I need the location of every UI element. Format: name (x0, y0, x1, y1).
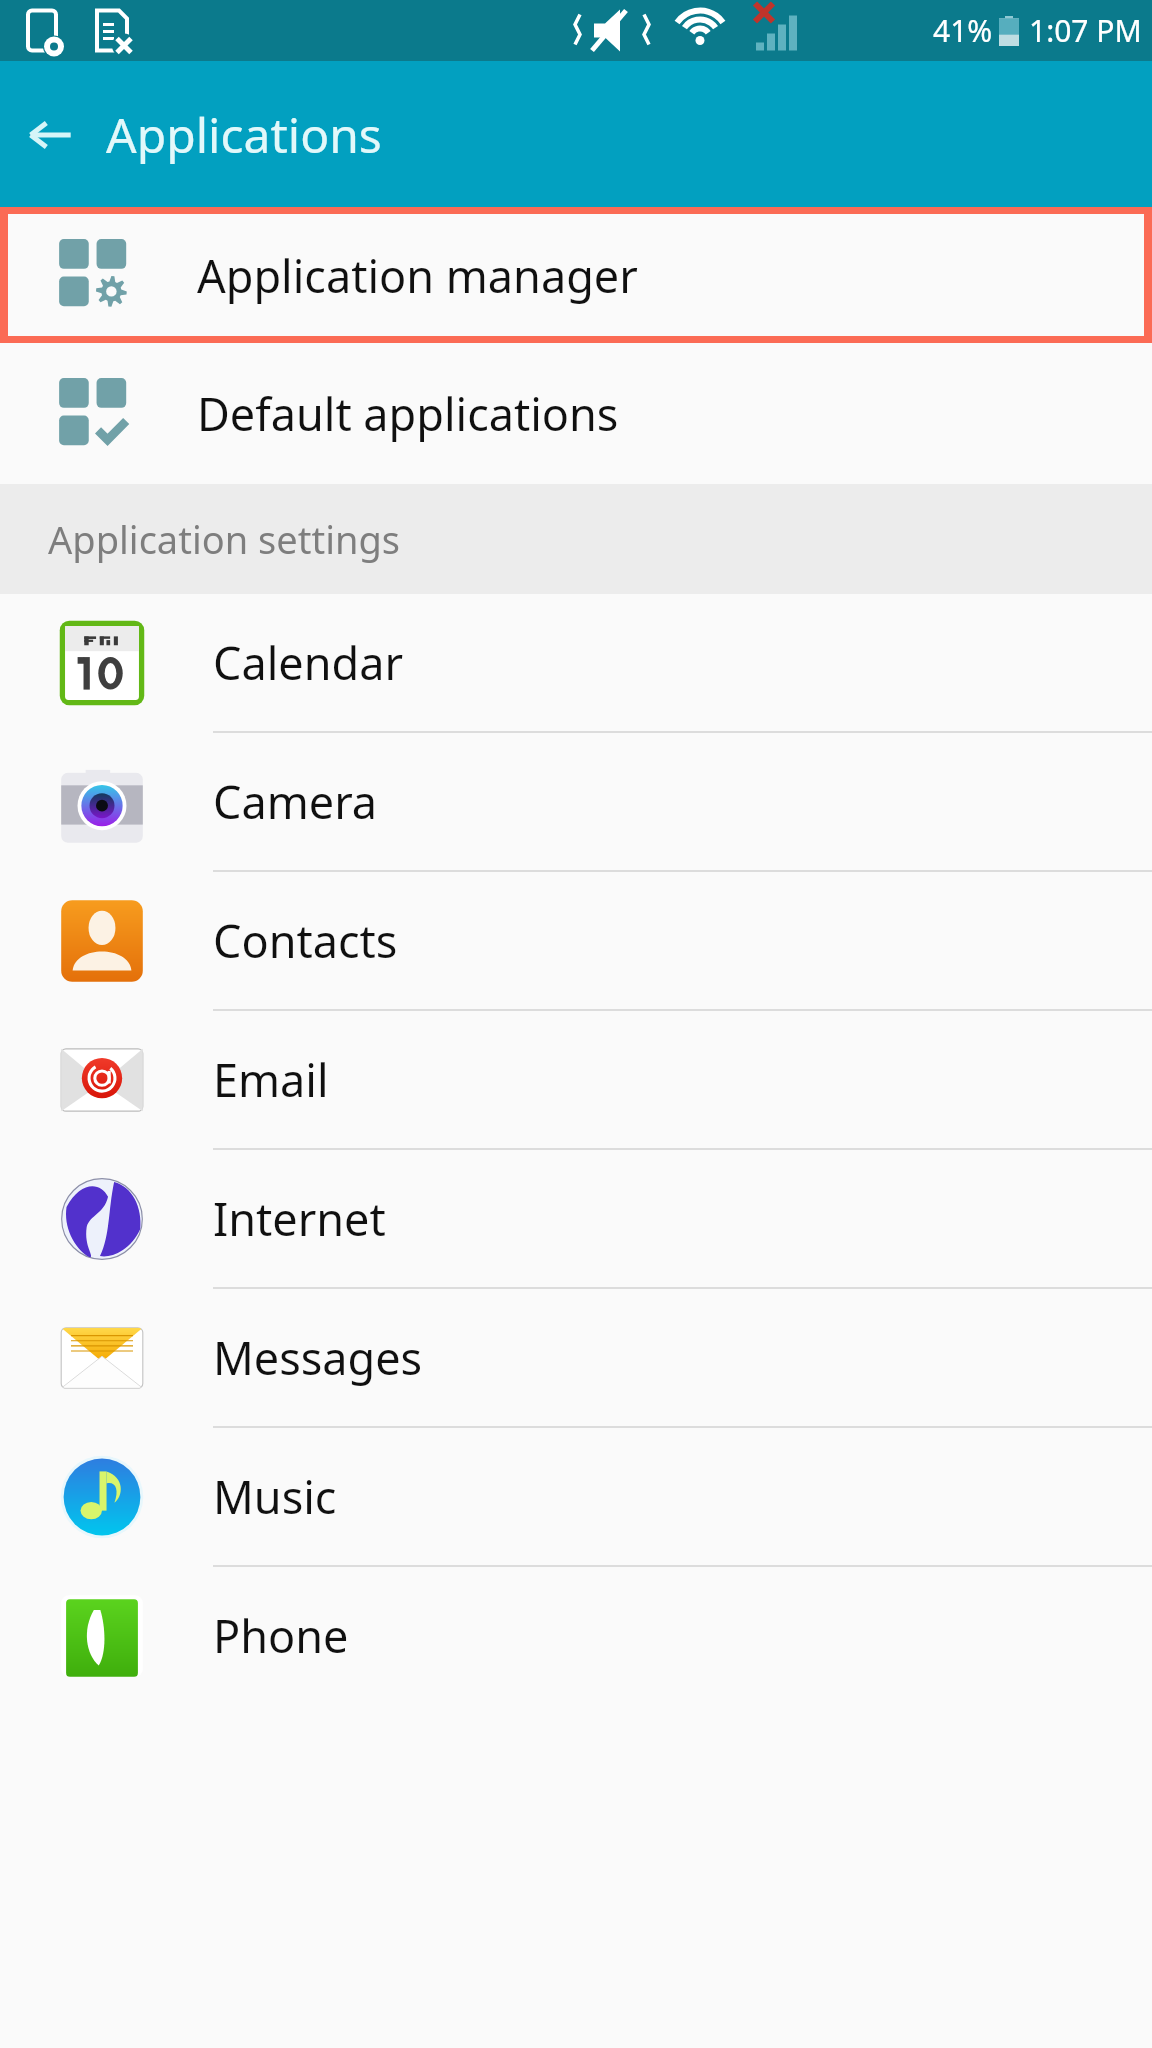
staticText: 41% (933, 10, 993, 51)
button[interactable]: Back (18, 103, 82, 167)
button[interactable]: Camera (0, 733, 1152, 870)
button[interactable]: Application manager (8, 214, 1144, 336)
staticText: Applications (106, 102, 382, 167)
staticText: Application manager (197, 245, 638, 306)
staticText: Email (213, 1049, 329, 1110)
button[interactable]: Contacts (0, 872, 1152, 1009)
staticText: Default applications (197, 383, 619, 444)
button[interactable]: Default applications (0, 343, 1152, 484)
button[interactable]: Internet (0, 1150, 1152, 1287)
button[interactable]: Phone (0, 1567, 1152, 1704)
staticText: 1:07 PM (1029, 10, 1142, 51)
staticText: Application settings (48, 513, 400, 565)
button[interactable]: Music (0, 1428, 1152, 1565)
staticText: Camera (213, 771, 378, 832)
staticText: Internet (213, 1188, 386, 1249)
button[interactable]: Email (0, 1011, 1152, 1148)
button[interactable]: Messages (0, 1289, 1152, 1426)
staticText: Calendar (213, 632, 403, 693)
button[interactable]: Calendar (0, 594, 1152, 731)
staticText: Contacts (213, 910, 398, 971)
staticText: Phone (213, 1605, 349, 1666)
staticText: Music (213, 1466, 337, 1527)
staticText: Messages (213, 1327, 423, 1388)
